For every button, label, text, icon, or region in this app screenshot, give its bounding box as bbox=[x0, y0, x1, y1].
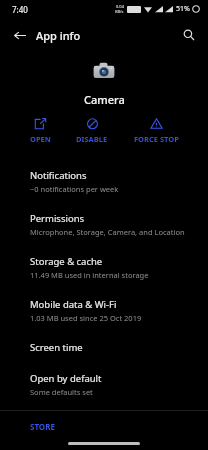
staticText: Permissions bbox=[30, 212, 85, 225]
button[interactable]: OPEN bbox=[24, 115, 57, 146]
staticText: Screen time bbox=[30, 341, 83, 354]
staticText: DISABLE bbox=[76, 134, 108, 144]
staticText: Storage & cache bbox=[30, 255, 103, 268]
button[interactable]: Notifications bbox=[0, 160, 208, 203]
button[interactable]: FORCE STOP bbox=[128, 115, 185, 146]
staticText: App info bbox=[36, 28, 81, 43]
staticText: FORCE STOP bbox=[134, 134, 179, 144]
staticText: 0.04 bbox=[116, 4, 124, 9]
button[interactable]: DISABLE bbox=[70, 115, 114, 146]
staticText: Mobile data & Wi-Fi bbox=[30, 298, 117, 311]
button[interactable]: Mobile data & Wi-Fi bbox=[0, 289, 208, 332]
button[interactable]: Open by default bbox=[0, 363, 208, 406]
button[interactable]: App details bbox=[0, 442, 208, 450]
staticText: Open by default bbox=[30, 372, 102, 385]
staticText: 11.49 MB used in internal storage bbox=[30, 270, 149, 280]
button[interactable]: Storage & cache bbox=[0, 246, 208, 289]
staticText: 7:40 bbox=[12, 4, 28, 15]
button[interactable]: Search bbox=[176, 22, 202, 48]
staticText: ~0 notifications per week bbox=[30, 184, 119, 194]
staticText: 51% bbox=[176, 4, 190, 14]
staticText: KB/s bbox=[115, 9, 124, 14]
button[interactable]: Permissions bbox=[0, 203, 208, 246]
staticText: Microphone, Storage, Camera, and Locatio… bbox=[30, 227, 185, 237]
button[interactable]: Screen time bbox=[0, 332, 208, 363]
staticText: Notifications bbox=[30, 169, 87, 182]
staticText: 1.03 MB used since 25 Oct 2019 bbox=[30, 313, 142, 323]
button[interactable]: Back bbox=[6, 22, 32, 48]
staticText: OPEN bbox=[30, 134, 51, 144]
staticText: STORE bbox=[30, 421, 55, 432]
staticText: Some defaults set bbox=[30, 387, 93, 397]
staticText: Camera bbox=[84, 92, 125, 107]
